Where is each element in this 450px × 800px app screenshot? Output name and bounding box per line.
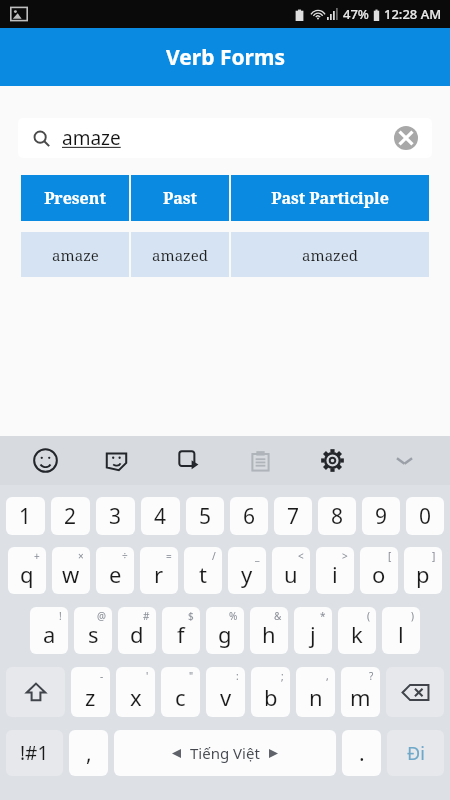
button[interactable]: 9 [362,497,400,535]
staticText: ( [367,609,370,623]
staticText: amaze [62,125,121,151]
staticText: !#1 [20,740,49,766]
button[interactable]: ? [341,667,380,717]
staticText: 4 [154,502,167,531]
button[interactable]: " [161,667,200,717]
staticText: Verb Forms [166,43,285,72]
button[interactable]: < [272,547,310,594]
staticText: k [351,619,363,649]
button[interactable]: * [294,607,332,654]
button[interactable]: Settings [296,436,368,485]
staticText: _ [255,549,260,563]
button[interactable]: : [206,667,245,717]
button[interactable]: 4 [141,497,180,535]
button[interactable]: ] [404,547,442,594]
staticText: Đi [407,741,425,766]
button[interactable]: Stickers [81,436,152,485]
button[interactable]: amazed [131,232,229,277]
button[interactable]: + [8,547,46,594]
staticText: 1 [19,502,32,531]
button[interactable]: @ [74,607,112,654]
button[interactable]: 2 [51,497,90,535]
staticText: " [189,669,194,683]
staticText: 3 [109,502,122,531]
button[interactable]: . [342,730,381,776]
staticText: o [372,559,386,589]
button[interactable]: Hide keyboard [368,436,440,485]
staticText: n [309,682,323,712]
button[interactable]: % [206,607,244,654]
button[interactable]: × [52,547,90,594]
staticText: $ [188,609,194,623]
button[interactable]: 6 [230,497,268,535]
button[interactable]: ( [338,607,376,654]
staticText: ' [146,669,149,683]
button[interactable]: amaze [21,232,129,277]
staticText: 47% [343,5,369,23]
staticText: ] [432,549,436,563]
staticText: v [220,682,232,712]
staticText: 6 [243,502,256,531]
staticText: Past Participle [271,187,389,209]
button[interactable]: ! [30,607,68,654]
button[interactable]: Clipboard [224,436,296,485]
button[interactable]: Emoji [10,436,81,485]
staticText: ! [59,609,62,623]
staticText: * [320,609,326,623]
button[interactable]: 3 [96,497,135,535]
button[interactable]: Tiếng Việt [114,730,336,776]
staticText: 2 [64,502,77,531]
staticText: d [130,619,144,649]
button[interactable]: 8 [318,497,356,535]
button[interactable]: , [69,730,108,776]
staticText: m [350,682,371,712]
staticText: y [241,559,253,589]
button[interactable]: , [296,667,335,717]
button[interactable]: - [71,667,110,717]
staticText: i [332,559,338,589]
staticText: = [166,549,172,563]
button[interactable]: amazed [231,232,429,277]
staticText: 8 [331,502,344,531]
button[interactable]: ÷ [96,547,134,594]
button[interactable]: # [118,607,156,654]
button[interactable]: ' [116,667,155,717]
button[interactable]: ) [382,607,420,654]
staticText: 5 [199,502,212,531]
staticText: s [88,619,99,649]
staticText: t [199,559,207,589]
button[interactable]: / [184,547,222,594]
staticText: × [78,549,84,563]
staticText: ? [369,669,374,683]
button[interactable]: [ [360,547,398,594]
button[interactable]: = [140,547,178,594]
staticText: r [154,559,164,589]
button[interactable]: 1 [6,497,45,535]
button[interactable]: ; [251,667,290,717]
button[interactable]: Backspace [386,667,444,717]
button[interactable]: & [250,607,288,654]
button[interactable]: Present [21,175,129,221]
button[interactable]: $ [162,607,200,654]
button[interactable]: Đi [387,730,444,776]
button[interactable]: !#1 [6,730,63,776]
button[interactable]: _ [228,547,266,594]
staticText: 7 [287,502,300,531]
button[interactable]: Past Participle [231,175,429,221]
button[interactable]: 5 [186,497,224,535]
staticText: , [326,669,329,683]
button[interactable]: GIF [152,436,224,485]
staticText: ) [411,609,414,623]
button[interactable]: 0 [406,497,444,535]
staticText: 0 [419,502,432,531]
button[interactable]: Past [131,175,229,221]
staticText: u [284,559,298,589]
button[interactable]: > [316,547,354,594]
staticText: & [274,609,282,623]
button[interactable]: 7 [274,497,312,535]
button[interactable]: Verb Forms [0,28,450,86]
staticText: c [175,682,186,712]
button[interactable]: Shift [6,667,65,717]
button[interactable]: Clear search [394,126,418,150]
button[interactable]: amaze [18,118,432,158]
